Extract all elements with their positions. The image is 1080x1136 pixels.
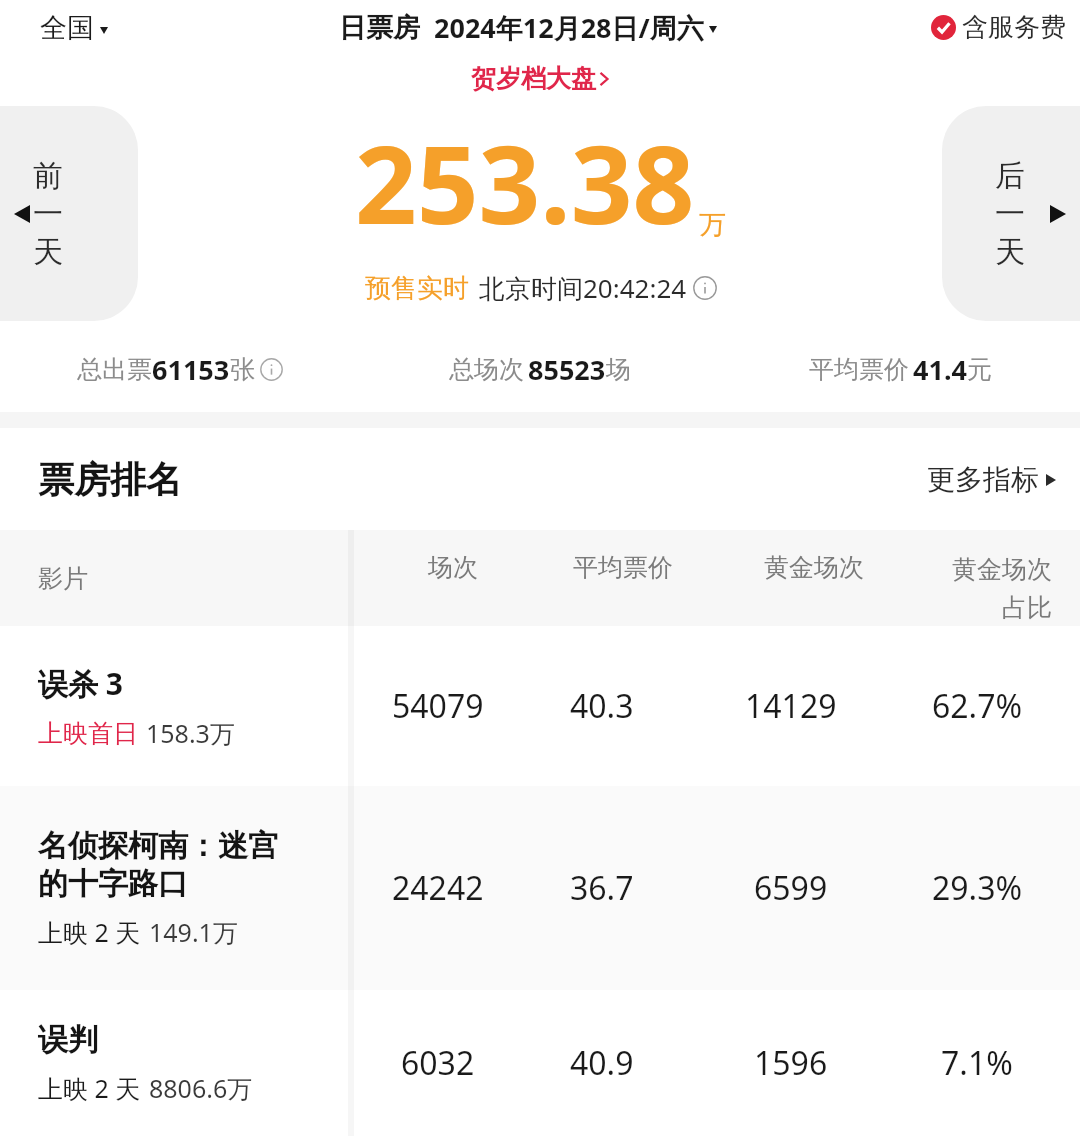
staticText: 29.3% — [932, 866, 1023, 910]
staticText: 14129 — [745, 684, 837, 728]
staticText: 149.1万 — [149, 915, 238, 949]
staticText: 天 — [995, 233, 1025, 271]
staticText: 名侦探柯南：迷宫 — [38, 827, 278, 865]
staticText: 85523 — [528, 351, 606, 388]
staticText: 一 — [33, 195, 63, 233]
button[interactable]: 名侦探柯南：迷宫 — [0, 786, 1080, 990]
staticText: 6032 — [401, 1041, 475, 1085]
staticText: 前 — [33, 157, 63, 195]
staticText: 误判 — [38, 1021, 98, 1059]
staticText: 253.38 — [355, 109, 695, 256]
staticText: 元 — [967, 354, 992, 385]
staticText: 天 — [33, 233, 63, 271]
staticText: 贺岁档大盘 — [471, 63, 596, 94]
staticText: 后 — [995, 157, 1025, 195]
staticText: 24242 — [392, 866, 484, 910]
staticText: 总出票 — [77, 354, 152, 385]
staticText: 上映 2 天 — [38, 1071, 141, 1105]
staticText: 万 — [699, 208, 726, 242]
staticText: 平均票价 — [809, 354, 909, 385]
staticText: 41.4 — [913, 351, 967, 388]
button[interactable]: 误杀 3 — [0, 626, 1080, 786]
staticText: 36.7 — [570, 866, 634, 910]
button[interactable]: 更多指标 — [927, 462, 1056, 497]
staticText: 全国 — [40, 11, 94, 45]
staticText: 平均票价 — [573, 552, 673, 583]
button[interactable]: 前一天 — [0, 106, 138, 321]
staticText: 场次 — [428, 552, 478, 583]
staticText: 北京时间20:42:24 — [479, 270, 687, 306]
staticText: 票房排名 — [38, 457, 182, 502]
staticText: 40.9 — [570, 1041, 634, 1085]
staticText: 40.3 — [570, 684, 634, 728]
staticText: 场 — [606, 354, 631, 385]
button[interactable]: 后一天 — [942, 106, 1080, 321]
staticText: 7.1% — [941, 1041, 1013, 1085]
staticText: 影片 — [38, 563, 88, 594]
button[interactable]: 误判 — [0, 990, 1080, 1136]
staticText: 上映 2 天 — [38, 915, 141, 949]
staticText: 误杀 3 — [38, 663, 123, 704]
staticText: 54079 — [392, 684, 484, 728]
staticText: 黄金场次 占比 — [912, 554, 1052, 624]
staticText: 黄金场次 — [764, 552, 864, 583]
staticText: 预售实时 — [365, 272, 469, 305]
staticText: 6599 — [754, 866, 828, 910]
staticText: 日票房 — [339, 11, 420, 45]
button[interactable]: 日票房 — [339, 9, 717, 46]
staticText: 62.7% — [932, 684, 1023, 728]
staticText: 一 — [995, 195, 1025, 233]
staticText: 61153 — [152, 351, 230, 388]
staticText: 张 — [230, 354, 255, 385]
staticText: 含服务费 — [962, 11, 1066, 44]
staticText: 8806.6万 — [149, 1071, 253, 1105]
staticText: 总场次 — [449, 354, 524, 385]
button[interactable]: 含服务费 — [931, 11, 1066, 44]
staticText: 158.3万 — [146, 716, 235, 750]
staticText: 1596 — [754, 1041, 828, 1085]
button[interactable]: 全国 — [40, 11, 108, 45]
button[interactable]: 贺岁档大盘 — [471, 63, 609, 94]
staticText: 的十字路口 — [38, 865, 188, 903]
staticText: 2024年12月28日/周六 — [434, 9, 704, 46]
staticText: 上映首日 — [38, 718, 138, 749]
staticText: 更多指标 — [927, 462, 1039, 497]
